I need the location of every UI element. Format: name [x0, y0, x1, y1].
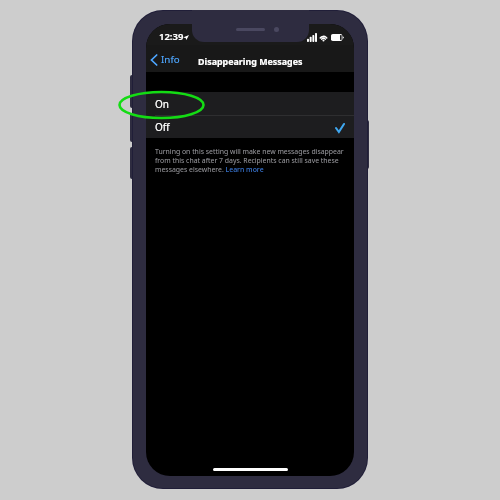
staticText: Disappearing Messages: [198, 55, 303, 67]
button[interactable]: Off: [146, 115, 354, 138]
staticText: 12:39: [159, 30, 184, 43]
staticText: Info: [161, 53, 180, 66]
staticText: Turning on this setting will make new me…: [155, 147, 344, 174]
staticText: On: [155, 97, 169, 111]
button[interactable]: On: [146, 92, 354, 115]
staticText: Off: [155, 120, 170, 134]
other: Selected: [336, 124, 344, 132]
button[interactable]: Info: [146, 48, 186, 71]
